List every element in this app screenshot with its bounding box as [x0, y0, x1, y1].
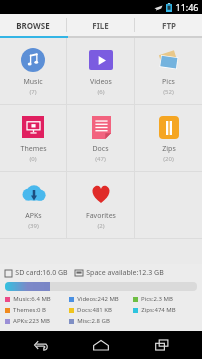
staticText: FTP: [162, 20, 176, 31]
staticText: APKs:223 MB: [13, 317, 50, 325]
staticText: BROWSE: [16, 20, 50, 31]
button[interactable]: Favorites: [67, 172, 134, 238]
staticText: Music: [23, 77, 43, 87]
other: Themes: [22, 116, 44, 138]
button[interactable]: Videos: [67, 38, 134, 104]
staticText: (52): [163, 88, 174, 96]
staticText: 11:46: [175, 1, 199, 13]
staticText: (47): [95, 155, 106, 163]
staticText: Videos:242 MB: [77, 295, 119, 303]
other: Favorites: [90, 184, 112, 204]
button[interactable]: FILE: [67, 14, 134, 36]
button[interactable]: Pics: [135, 38, 202, 104]
staticText: Favorites: [86, 211, 116, 221]
staticText: Misc:2.8 GB: [77, 317, 110, 325]
staticText: Videos: [90, 77, 112, 87]
other: APKs: [21, 184, 46, 204]
staticText: APKs: [25, 211, 42, 221]
other: Pics: [157, 48, 181, 72]
button[interactable]: Recent apps: [142, 331, 182, 359]
other: Zips: [159, 116, 179, 139]
button[interactable]: Back: [21, 331, 61, 359]
button[interactable]: Themes: [0, 105, 66, 171]
staticText: Zips: [162, 144, 176, 154]
staticText: Docs: [92, 144, 109, 154]
staticText: Zips:474 MB: [141, 306, 176, 314]
other: Docs: [92, 116, 111, 139]
staticText: (6): [97, 88, 105, 96]
button[interactable]: FTP: [135, 14, 202, 36]
button[interactable]: APKs: [0, 172, 66, 238]
other: Videos: [89, 50, 113, 70]
staticText: (7): [29, 88, 37, 96]
staticText: Themes:0 B: [13, 306, 46, 314]
staticText: Space available:12.3 GB: [86, 268, 164, 278]
staticText: Pics: [162, 77, 175, 87]
button[interactable]: Docs: [67, 105, 134, 171]
other: Music: [21, 48, 45, 72]
staticText: (0): [29, 155, 37, 163]
staticText: Docs:481 KB: [77, 306, 112, 314]
button[interactable]: BROWSE: [0, 14, 66, 36]
button[interactable]: Home: [81, 331, 121, 359]
staticText: (20): [163, 155, 174, 163]
staticText: Themes: [20, 144, 47, 154]
staticText: SD card:16.0 GB: [15, 268, 68, 278]
staticText: Pics:2.3 MB: [141, 295, 173, 303]
staticText: FILE: [92, 20, 109, 31]
staticText: Music:6.4 MB: [13, 295, 51, 303]
button[interactable]: Zips: [135, 105, 202, 171]
button[interactable]: Music: [0, 38, 66, 104]
staticText: (39): [28, 222, 39, 230]
staticText: (2): [97, 222, 105, 230]
